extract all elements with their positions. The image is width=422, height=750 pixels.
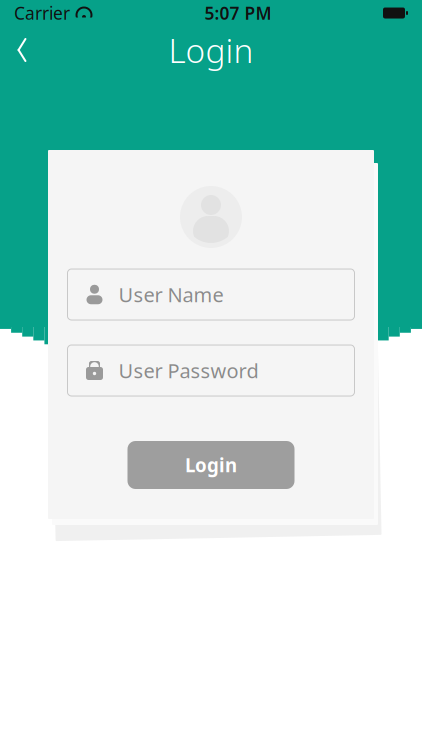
- staticText: Carrier: [14, 1, 70, 24]
- staticText: 5:07 PM: [204, 1, 271, 24]
- button[interactable]: Login: [127, 441, 294, 489]
- button[interactable]: Back: [0, 28, 44, 72]
- staticText: Login: [168, 28, 253, 72]
- staticText: Login: [185, 453, 237, 477]
- staticText: User Name: [118, 281, 223, 308]
- staticText: User Password: [118, 357, 258, 384]
